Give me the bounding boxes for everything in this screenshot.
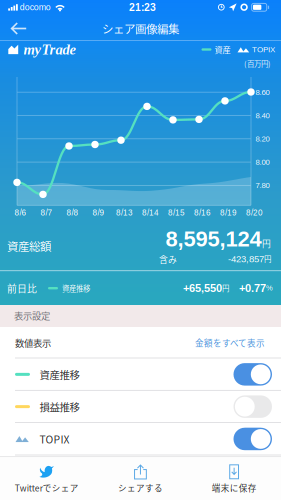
- staticText: 表示設定: [14, 309, 50, 322]
- staticText: 資産総額: [7, 238, 51, 254]
- staticText: 前日比: [7, 281, 37, 295]
- staticText: 8/15: [168, 208, 185, 217]
- staticText: docomo: [20, 2, 51, 12]
- staticText: 円: [222, 282, 229, 293]
- staticText: 8/7: [40, 208, 52, 217]
- staticText: 資産: [214, 43, 230, 55]
- button[interactable]: 資産推移: [0, 358, 281, 390]
- staticText: 8.40: [255, 111, 269, 120]
- staticText: 8/13: [116, 208, 133, 217]
- staticText: 端末に保存: [212, 482, 257, 494]
- staticText: Twitterでシェア: [15, 482, 79, 494]
- button[interactable]: 端末に保存: [187, 457, 281, 500]
- staticText: 数値表示: [15, 336, 51, 349]
- staticText: myTrade: [23, 41, 76, 58]
- button[interactable]: Twitterでシェア: [0, 457, 94, 500]
- button[interactable]: シェアする: [94, 457, 187, 500]
- button[interactable]: 損益推移: [0, 390, 281, 423]
- staticText: 8.20: [255, 134, 269, 143]
- staticText: 8.60: [255, 88, 269, 96]
- staticText: 8/20: [246, 208, 263, 217]
- staticText: 8/19: [220, 208, 237, 217]
- staticText: 円: [262, 237, 271, 250]
- staticText: 7.80: [255, 181, 269, 190]
- staticText: 円: [264, 253, 271, 264]
- button[interactable]: TOPIX: [0, 423, 281, 455]
- staticText: %: [266, 284, 273, 292]
- staticText: 資産推移: [39, 367, 79, 382]
- staticText: +0.77: [239, 282, 266, 294]
- staticText: 8/9: [92, 208, 104, 217]
- staticText: 損益推移: [39, 399, 79, 414]
- staticText: 含み: [159, 253, 177, 265]
- staticText: TOPIX: [252, 45, 275, 54]
- staticText: 8/6: [14, 208, 26, 217]
- staticText: (百万円): [244, 58, 271, 69]
- staticText: 8/14: [142, 208, 159, 217]
- button[interactable]: Back: [0, 17, 36, 40]
- staticText: 8,595,124: [165, 227, 261, 251]
- staticText: 資産推移: [62, 283, 90, 294]
- staticText: +65,550: [183, 282, 222, 294]
- staticText: -423,857: [228, 254, 264, 264]
- staticText: シェアする: [118, 482, 163, 494]
- staticText: 8.00: [255, 158, 269, 166]
- staticText: 8/16: [194, 208, 211, 217]
- staticText: 金額をすべて表示: [195, 336, 265, 349]
- staticText: シェア画像編集: [102, 20, 179, 37]
- staticText: 8/8: [66, 208, 78, 217]
- staticText: 21:23: [129, 1, 156, 13]
- staticText: TOPIX: [39, 431, 69, 446]
- button[interactable]: 数値表示: [0, 327, 281, 358]
